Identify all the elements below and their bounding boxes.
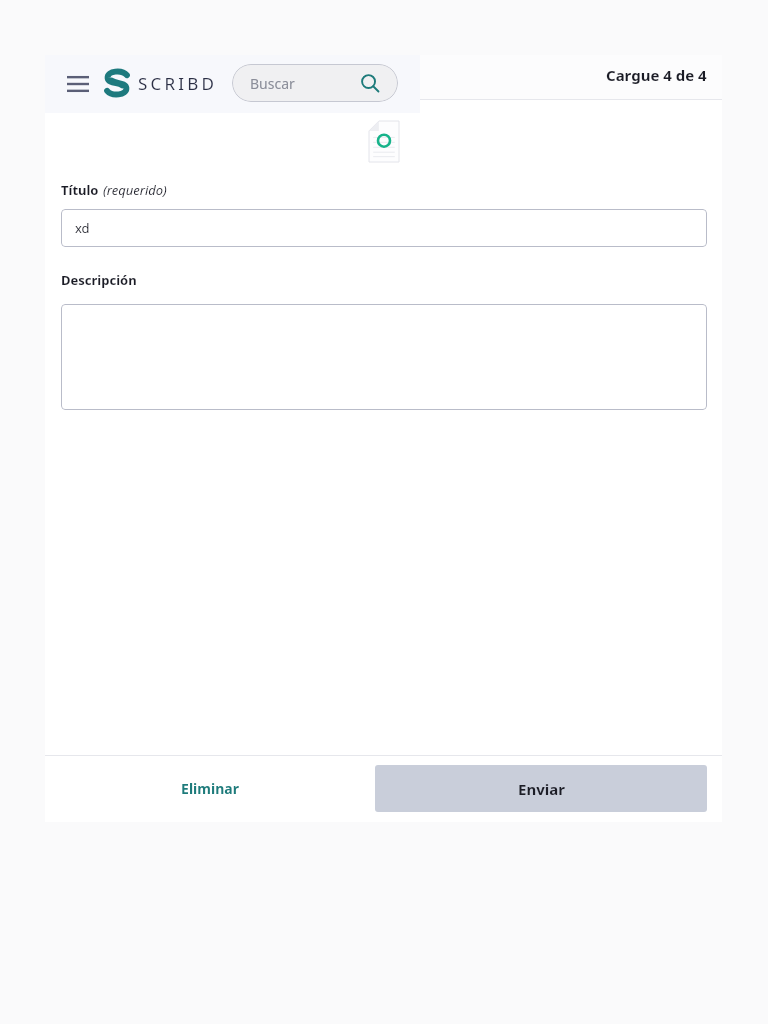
staticText: xd bbox=[75, 219, 90, 237]
staticText: Título bbox=[61, 181, 99, 199]
staticText: Buscar bbox=[250, 74, 295, 93]
staticText: Enviar bbox=[518, 779, 565, 799]
staticText: Descripción bbox=[61, 271, 137, 289]
button[interactable]: xd bbox=[61, 209, 707, 247]
button[interactable]: Menu bbox=[62, 68, 94, 100]
button[interactable]: Eliminar bbox=[104, 765, 316, 812]
button[interactable]: Enviar bbox=[375, 765, 707, 812]
staticText: SCRIBD bbox=[138, 72, 218, 95]
staticText: (requerido) bbox=[103, 181, 167, 199]
staticText: Cargue 4 de 4 bbox=[606, 65, 707, 85]
button[interactable]: Scribd home bbox=[104, 69, 130, 97]
button[interactable] bbox=[61, 304, 707, 410]
staticText: Eliminar bbox=[181, 779, 239, 798]
button[interactable]: SCRIBD bbox=[138, 70, 218, 96]
button[interactable]: Buscar bbox=[232, 64, 398, 102]
